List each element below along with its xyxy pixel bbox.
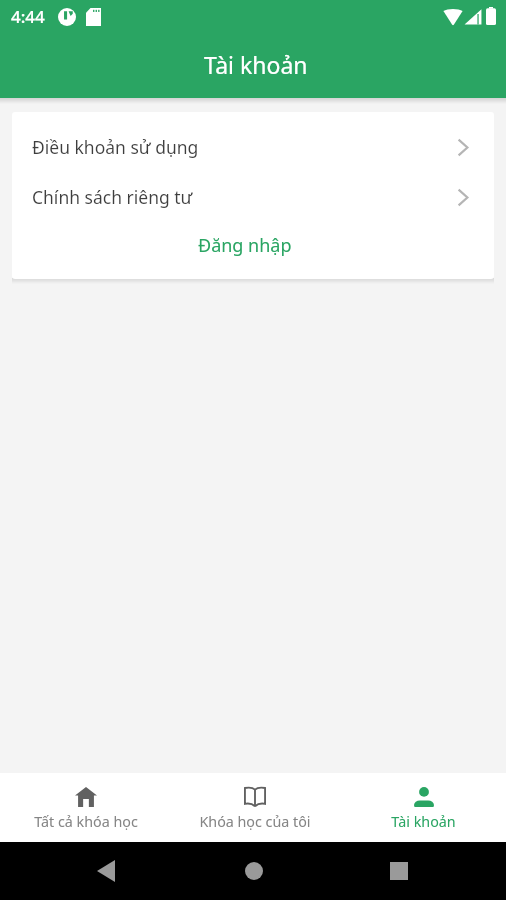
button[interactable]: Khóa học của tôi — [170, 773, 339, 842]
staticText: Điều khoản sử dụng — [32, 135, 199, 159]
button[interactable]: Tất cả khóa học — [2, 773, 170, 842]
button[interactable]: Home — [245, 862, 263, 880]
button[interactable]: Điều khoản sử dụng — [12, 122, 494, 172]
staticText: Tất cả khóa học — [34, 812, 138, 831]
staticText: Khóa học của tôi — [199, 812, 311, 831]
button[interactable]: Back — [97, 860, 115, 882]
staticText: Tài khoản — [391, 812, 456, 831]
button[interactable]: Tài khoản — [339, 773, 506, 842]
staticText: Đăng nhập — [198, 233, 292, 258]
button[interactable]: Đăng nhập — [12, 222, 494, 279]
staticText: 4:44 — [11, 5, 45, 28]
button[interactable]: Chính sách riêng tư — [12, 172, 494, 222]
staticText: Chính sách riêng tư — [32, 185, 193, 209]
staticText: Tài khoản — [204, 49, 308, 80]
